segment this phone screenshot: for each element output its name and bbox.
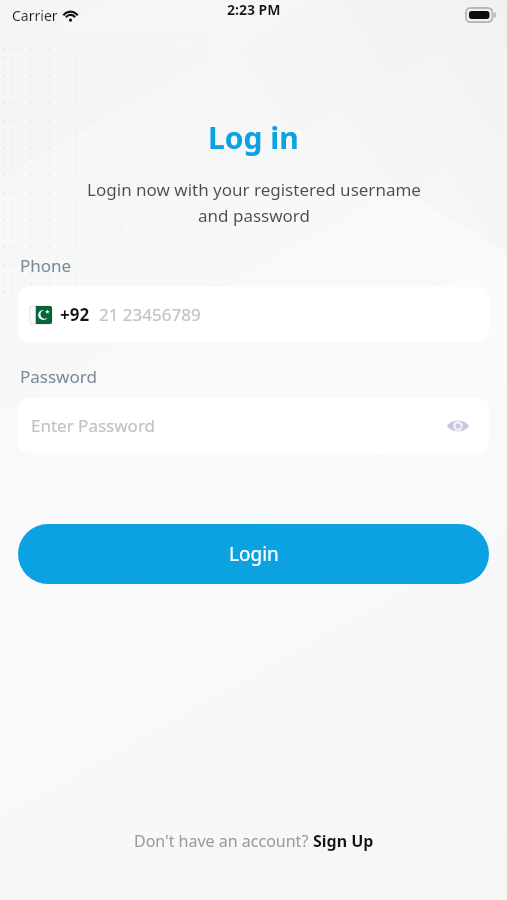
button[interactable]: +92 — [18, 287, 489, 342]
staticText: Log in — [208, 117, 299, 158]
button[interactable]: Login — [18, 524, 489, 584]
staticText: Login — [229, 541, 279, 567]
staticText: Phone — [20, 254, 72, 277]
button[interactable]: Show password — [441, 409, 475, 443]
staticText: Sign Up — [313, 830, 374, 852]
staticText: Carrier — [12, 6, 58, 25]
staticText: Don't have an account? — [134, 830, 313, 852]
button[interactable]: Enter Password — [18, 398, 489, 453]
staticText: 2:23 PM — [227, 0, 281, 19]
staticText: 21 23456789 — [99, 303, 201, 326]
staticText: Password — [20, 365, 97, 388]
staticText: Login now with your registered username … — [87, 178, 421, 227]
staticText: Enter Password — [31, 414, 156, 437]
staticText: +92 — [60, 303, 90, 326]
button[interactable]: Don't have an account? — [134, 830, 374, 852]
